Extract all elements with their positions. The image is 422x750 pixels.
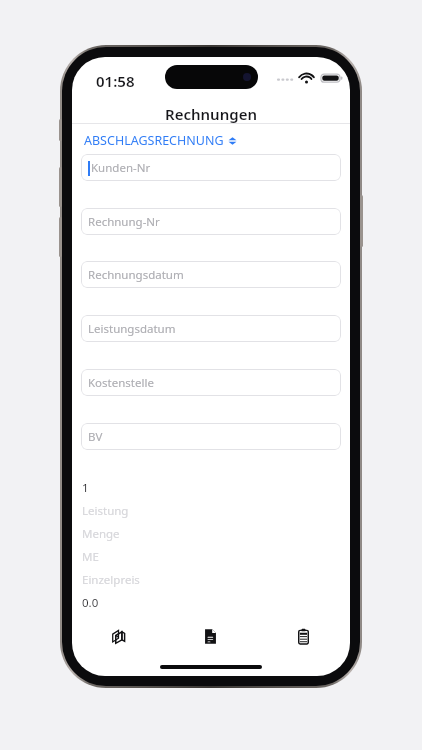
button[interactable]: Document bbox=[164, 618, 257, 654]
staticText: 1 bbox=[82, 480, 89, 496]
button[interactable]: Leistungsdatum bbox=[81, 315, 341, 342]
staticText: Leistung bbox=[82, 503, 129, 519]
staticText: Kunden-Nr bbox=[91, 160, 151, 176]
staticText: Rechnungsdatum bbox=[88, 267, 184, 283]
staticText: Einzelpreis bbox=[82, 572, 140, 588]
button[interactable]: Clipboard bbox=[257, 618, 350, 654]
button[interactable]: Rechnung-Nr bbox=[81, 208, 341, 235]
staticText: Rechnung-Nr bbox=[88, 214, 160, 230]
button[interactable]: ABSCHLAGSRECHNUNG bbox=[82, 130, 239, 151]
button[interactable]: Rechnungsdatum bbox=[81, 261, 341, 288]
staticText: Leistungsdatum bbox=[88, 321, 176, 337]
staticText: 0.0 bbox=[82, 595, 99, 611]
staticText: ME bbox=[82, 549, 99, 565]
staticText: BV bbox=[88, 429, 103, 445]
staticText: ABSCHLAGSRECHNUNG bbox=[84, 132, 224, 149]
button[interactable]: Layers bbox=[72, 618, 164, 654]
staticText: 01:58 bbox=[96, 71, 135, 91]
staticText: Kostenstelle bbox=[88, 375, 154, 391]
button[interactable]: BV bbox=[81, 423, 341, 450]
staticText: Rechnungen bbox=[165, 104, 257, 124]
button[interactable]: Kostenstelle bbox=[81, 369, 341, 396]
staticText: Menge bbox=[82, 526, 120, 542]
button[interactable]: Kunden-Nr bbox=[81, 154, 341, 181]
